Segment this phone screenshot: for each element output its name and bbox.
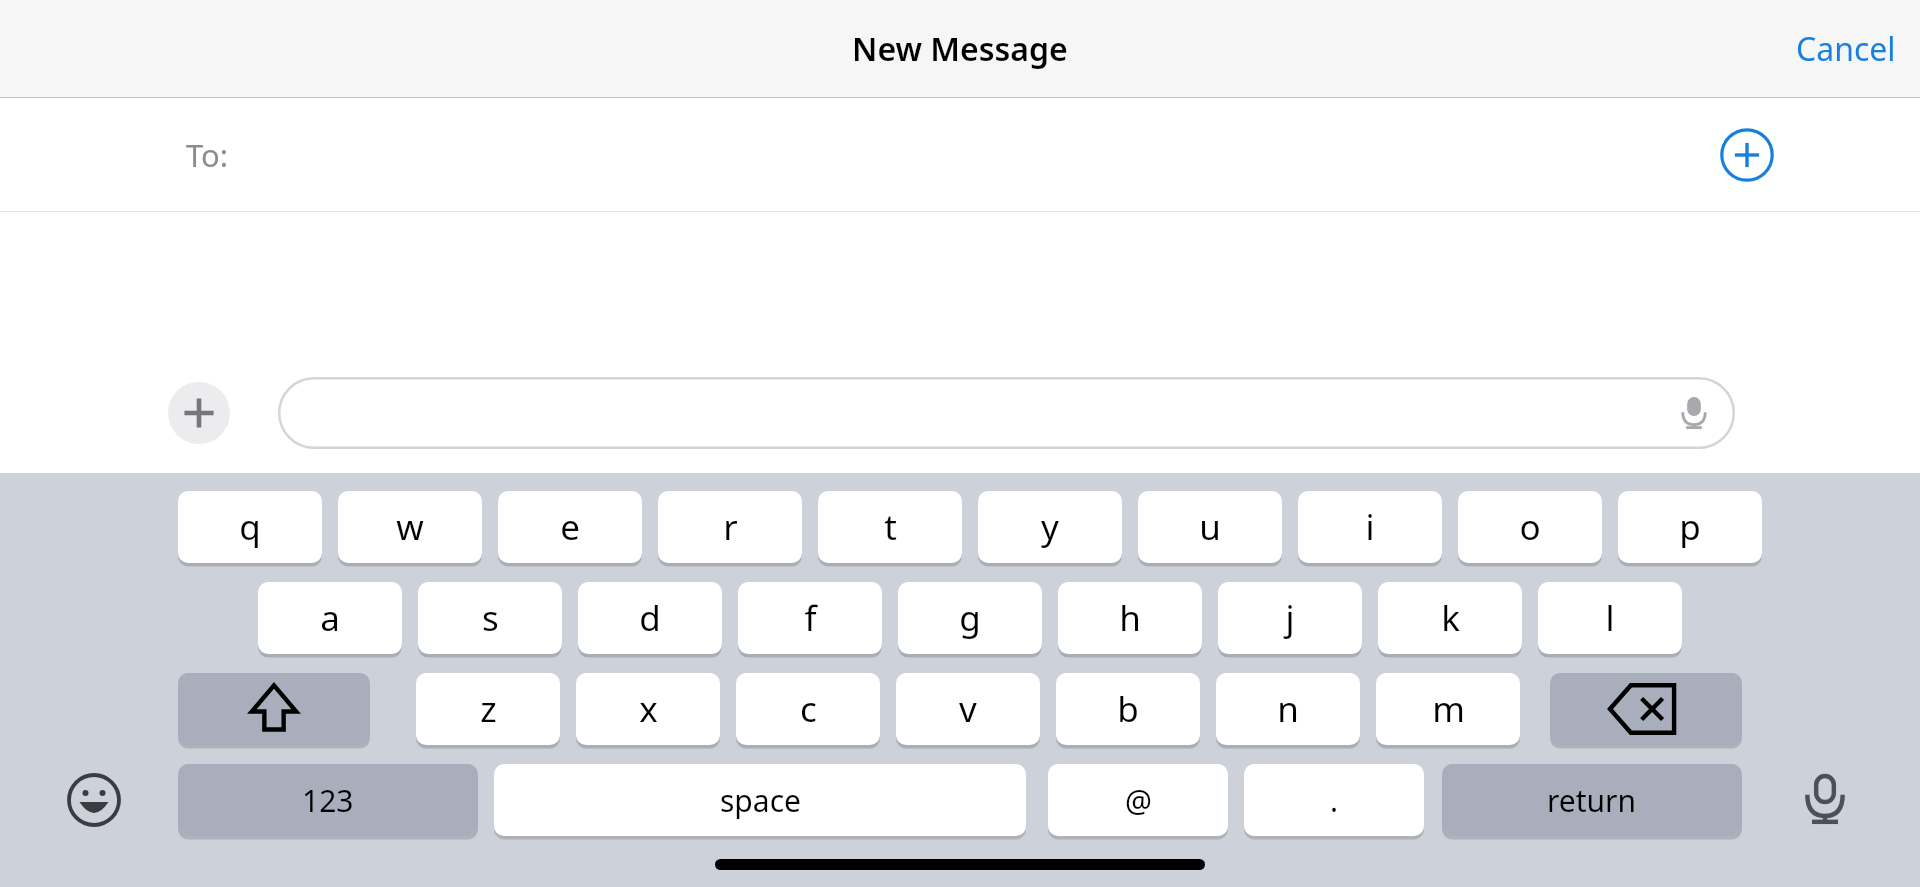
- button[interactable]: t: [818, 491, 962, 563]
- button[interactable]: Shift: [178, 673, 370, 745]
- staticText: d: [639, 594, 661, 642]
- staticText: z: [480, 685, 497, 733]
- staticText: l: [1605, 594, 1615, 642]
- button[interactable]: Backspace: [1550, 673, 1742, 745]
- staticText: 123: [302, 780, 354, 821]
- staticText: u: [1199, 503, 1221, 551]
- button[interactable]: v: [896, 673, 1040, 745]
- staticText: q: [239, 503, 261, 551]
- staticText: r: [723, 503, 738, 551]
- button[interactable]: [278, 377, 1735, 449]
- staticText: y: [1041, 503, 1059, 551]
- staticText: g: [959, 594, 981, 642]
- button[interactable]: k: [1378, 582, 1522, 654]
- button[interactable]: d: [578, 582, 722, 654]
- staticText: n: [1277, 685, 1299, 733]
- button[interactable]: u: [1138, 491, 1282, 563]
- staticText: c: [800, 685, 817, 733]
- button[interactable]: return: [1442, 764, 1742, 836]
- staticText: e: [560, 503, 580, 551]
- staticText: m: [1432, 685, 1465, 733]
- staticText: h: [1119, 594, 1141, 642]
- button[interactable]: Add contact: [1720, 128, 1774, 182]
- button[interactable]: p: [1618, 491, 1762, 563]
- button[interactable]: b: [1056, 673, 1200, 745]
- button[interactable]: j: [1218, 582, 1362, 654]
- staticText: s: [482, 594, 499, 642]
- button[interactable]: q: [178, 491, 322, 563]
- staticText: o: [1519, 503, 1541, 551]
- staticText: i: [1365, 503, 1375, 551]
- button[interactable]: .: [1244, 764, 1424, 836]
- button[interactable]: c: [736, 673, 880, 745]
- staticText: x: [639, 685, 658, 733]
- staticText: Cancel: [1796, 27, 1896, 71]
- button[interactable]: Add attachment: [168, 382, 230, 444]
- staticText: w: [396, 503, 424, 551]
- button[interactable]: l: [1538, 582, 1682, 654]
- staticText: f: [804, 594, 817, 642]
- button[interactable]: f: [738, 582, 882, 654]
- button[interactable]: space: [494, 764, 1026, 836]
- button[interactable]: w: [338, 491, 482, 563]
- button[interactable]: Emoji keyboard: [58, 764, 130, 836]
- button[interactable]: Cancel: [1772, 11, 1920, 87]
- staticText: .: [1330, 780, 1339, 821]
- button[interactable]: n: [1216, 673, 1360, 745]
- button[interactable]: @: [1048, 764, 1228, 836]
- staticText: @: [1125, 780, 1152, 821]
- staticText: return: [1547, 780, 1637, 821]
- staticText: b: [1117, 685, 1139, 733]
- button[interactable]: m: [1376, 673, 1520, 745]
- button[interactable]: h: [1058, 582, 1202, 654]
- button[interactable]: x: [576, 673, 720, 745]
- button[interactable]: y: [978, 491, 1122, 563]
- staticText: t: [884, 503, 897, 551]
- staticText: New Message: [852, 27, 1068, 71]
- button[interactable]: Dictation: [1786, 761, 1864, 839]
- button[interactable]: r: [658, 491, 802, 563]
- button[interactable]: 123: [178, 764, 478, 836]
- staticText: a: [320, 594, 340, 642]
- button[interactable]: i: [1298, 491, 1442, 563]
- staticText: space: [720, 780, 801, 821]
- button[interactable]: g: [898, 582, 1042, 654]
- button[interactable]: a: [258, 582, 402, 654]
- button[interactable]: z: [416, 673, 560, 745]
- staticText: To:: [186, 134, 229, 176]
- button[interactable]: o: [1458, 491, 1602, 563]
- button[interactable]: s: [418, 582, 562, 654]
- staticText: j: [1285, 594, 1295, 642]
- button[interactable]: e: [498, 491, 642, 563]
- staticText: v: [959, 685, 977, 733]
- staticText: p: [1679, 503, 1701, 551]
- staticText: k: [1441, 594, 1460, 642]
